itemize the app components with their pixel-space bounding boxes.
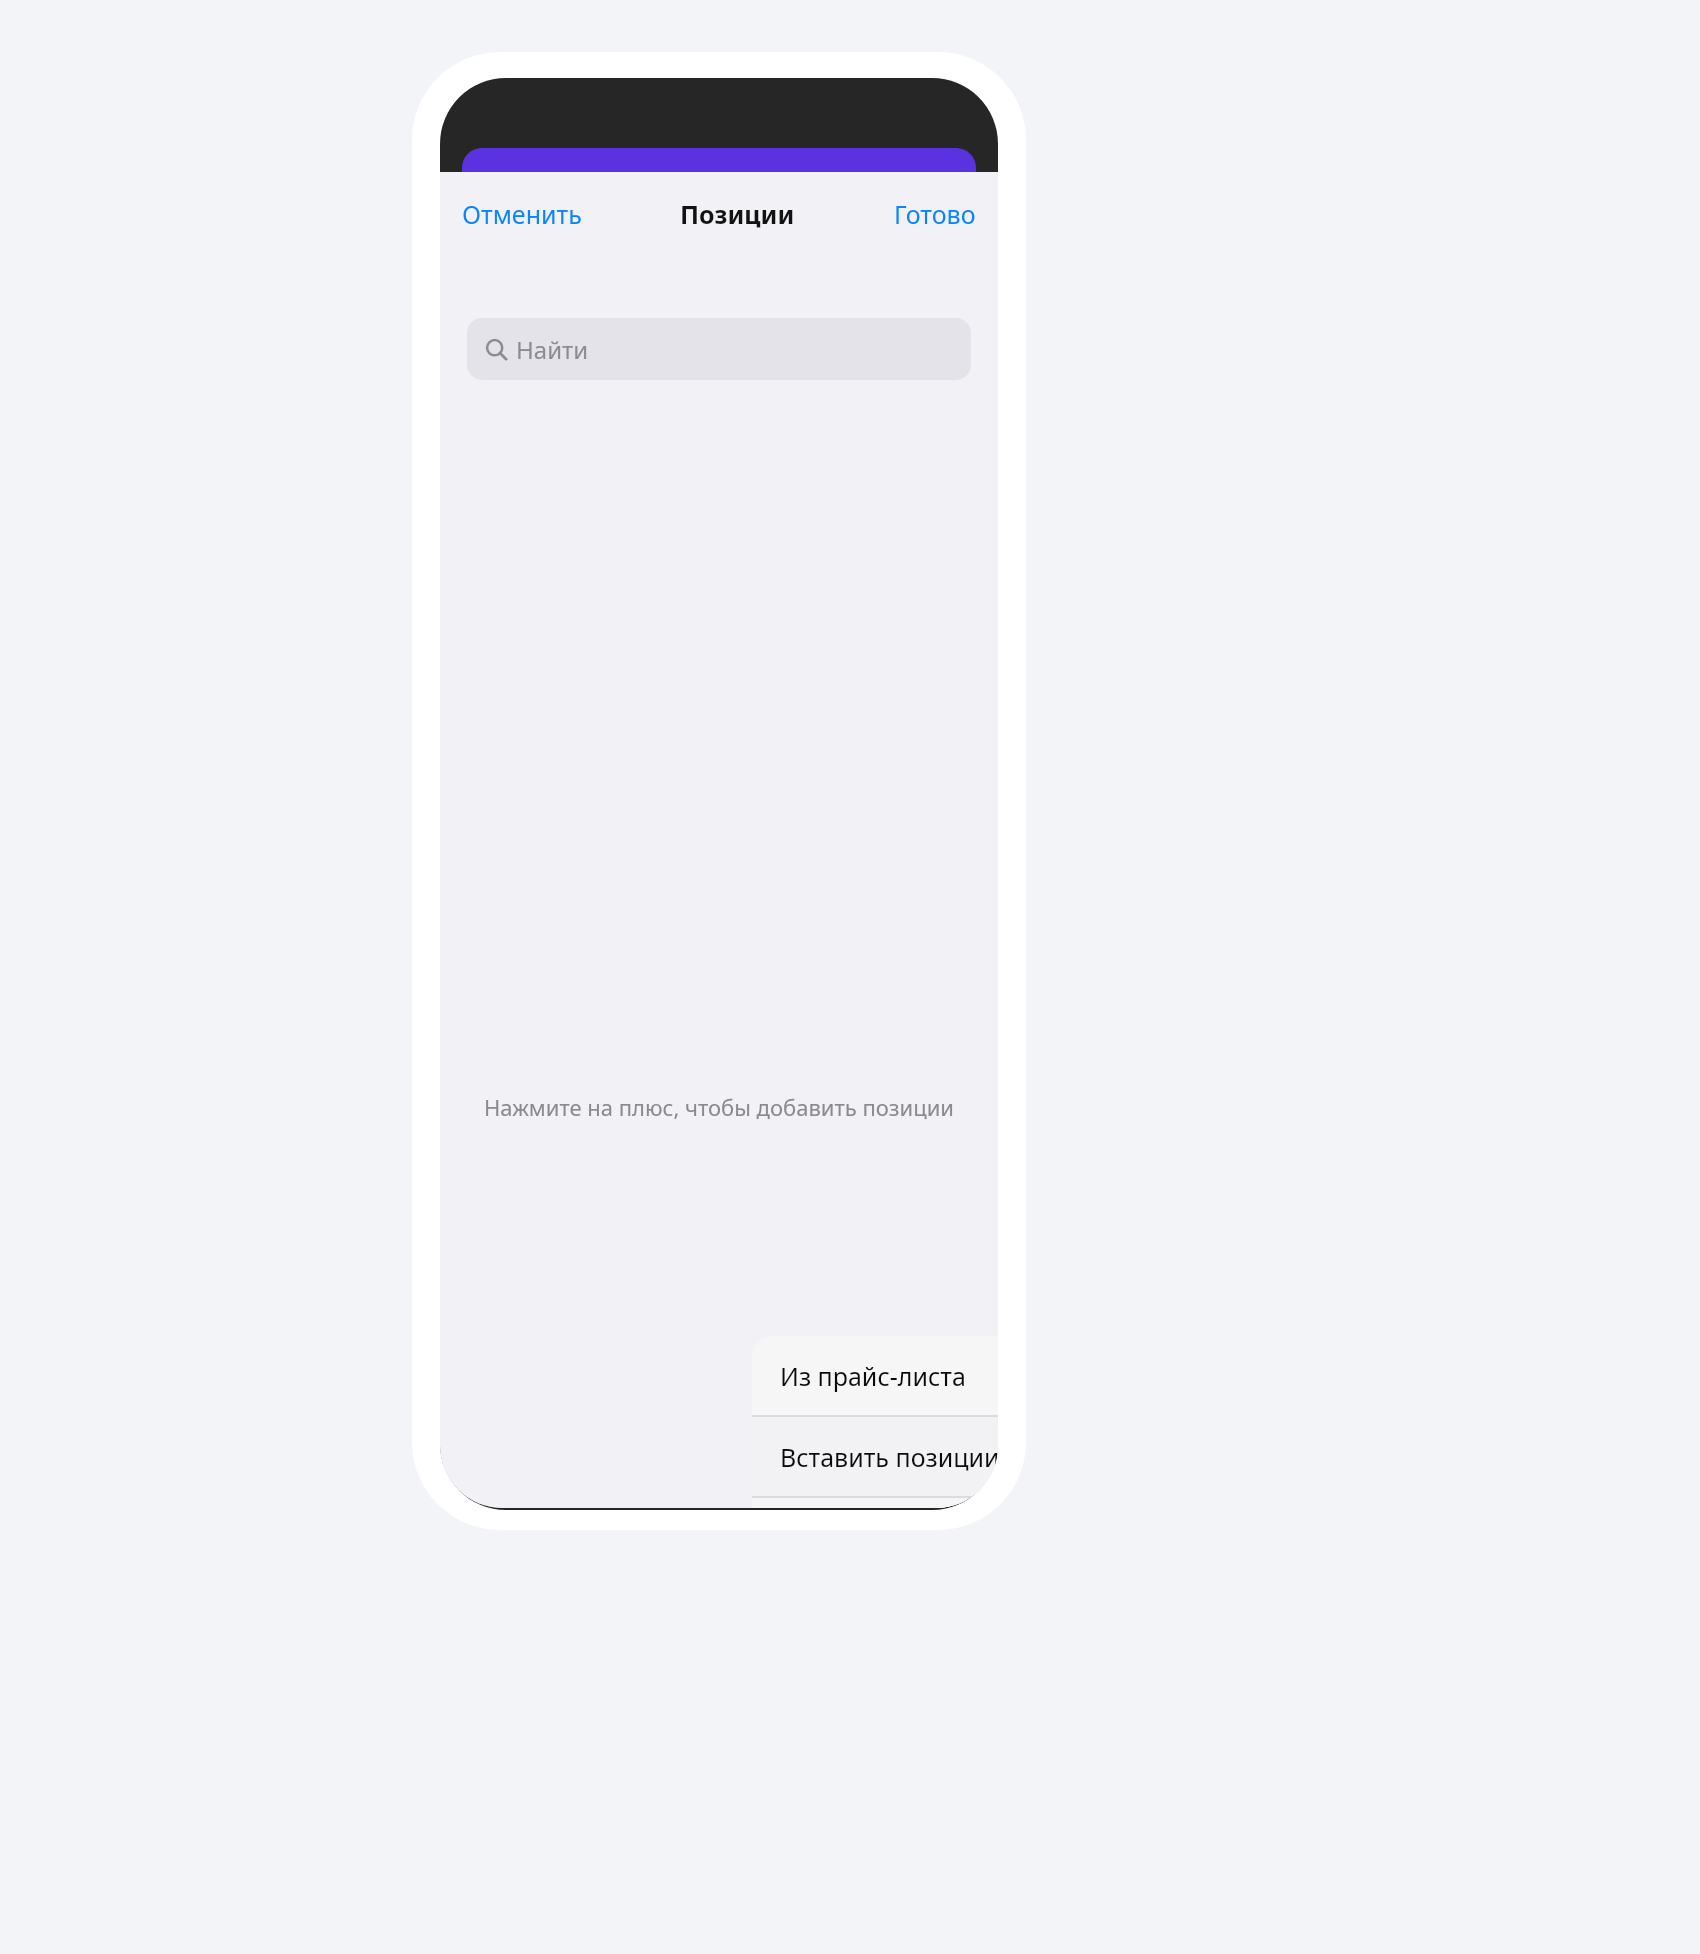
button[interactable]: Вставить позиции (AI) [752,1417,998,1496]
staticText: Позиции [680,197,795,231]
staticText: Отменить [462,197,582,231]
staticText: Готово [894,197,976,231]
button[interactable]: Из прайс-листа [752,1336,998,1415]
staticText: Из прайс-листа [780,1359,966,1393]
staticText: Вставить позиции (AI) [780,1440,998,1474]
staticText: Найти [516,333,589,366]
button[interactable]: Отменить [456,191,588,237]
button[interactable]: Найти [467,318,971,380]
staticText: Нажмите на плюс, чтобы добавить позиции [484,1092,954,1122]
button[interactable]: Готово [888,191,982,237]
button[interactable]: Добавить новую [752,1498,998,1508]
